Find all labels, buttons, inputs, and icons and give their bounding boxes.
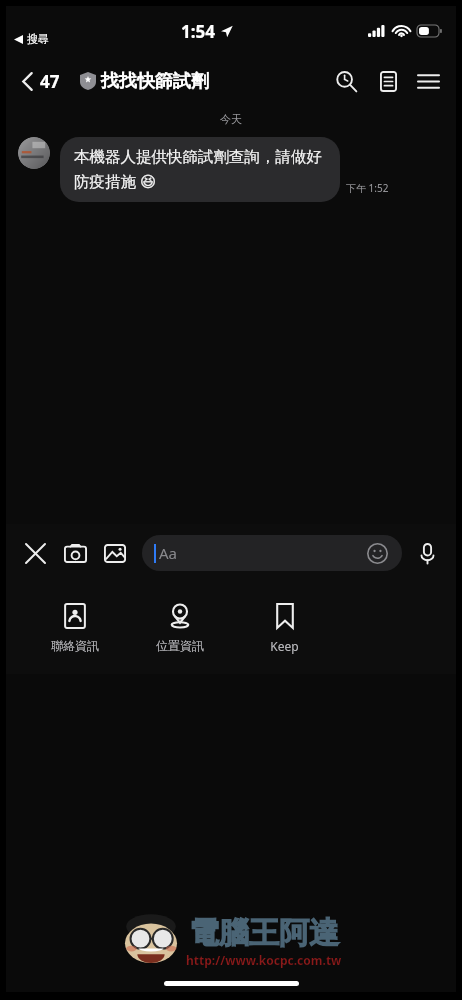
staticText: http://www.kocpc.com.tw	[186, 952, 342, 968]
staticText: 今天	[220, 112, 242, 126]
button[interactable]: 47	[16, 66, 66, 97]
staticText: 聯絡資訊	[51, 638, 99, 653]
button[interactable]: Menu	[410, 63, 446, 99]
button[interactable]	[18, 137, 50, 169]
staticText: 本機器人提供快篩試劑查詢，請做好防疫措施 😆	[74, 147, 326, 192]
staticText: Aa	[159, 543, 178, 563]
button[interactable]: Voice message	[410, 536, 444, 570]
staticText: 電腦王阿達	[189, 914, 339, 952]
button[interactable]: Keep	[232, 597, 337, 660]
staticText: 47	[40, 70, 60, 93]
button[interactable]: 聯絡資訊	[22, 597, 127, 659]
staticText: 下午 1:52	[346, 181, 389, 195]
staticText: Keep	[270, 638, 299, 654]
button[interactable]: Aa	[142, 535, 402, 571]
button[interactable]: 本機器人提供快篩試劑查詢，請做好防疫措施 😆	[60, 137, 340, 202]
button[interactable]: Emoji	[364, 540, 390, 566]
button[interactable]: Close	[18, 536, 52, 570]
staticText: 位置資訊	[156, 638, 204, 653]
staticText: 搜尋	[27, 32, 49, 46]
button[interactable]: 位置資訊	[127, 597, 232, 659]
button[interactable]: Search history	[328, 63, 364, 99]
button[interactable]: Camera	[58, 536, 92, 570]
button[interactable]: Photos	[98, 536, 132, 570]
staticText: 1:54	[181, 20, 215, 43]
staticText: 找找快篩試劑	[101, 70, 209, 93]
button[interactable]: Notes	[370, 63, 406, 99]
